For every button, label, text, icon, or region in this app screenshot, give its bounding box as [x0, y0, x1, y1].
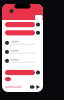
button[interactable]: Message [5, 30, 40, 35]
button[interactable]: Profile [9, 9, 14, 13]
button[interactable]: Conversation [5, 50, 40, 54]
button[interactable]: Conversation [5, 59, 40, 63]
button[interactable]: Message [5, 22, 40, 27]
button[interactable]: Conversation [5, 41, 40, 45]
button[interactable]: Send [36, 85, 40, 89]
button[interactable]: Message [5, 70, 40, 75]
button[interactable]: Camera [30, 85, 34, 89]
